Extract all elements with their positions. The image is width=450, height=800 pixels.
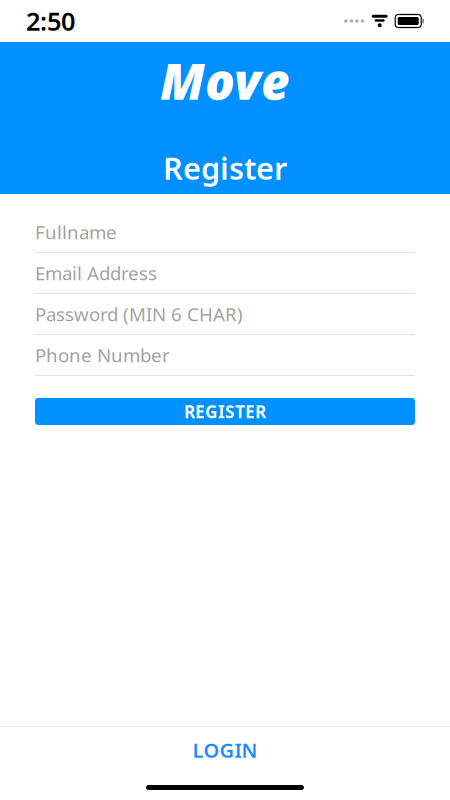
staticText: Phone Number bbox=[35, 343, 170, 367]
staticText: Email Address bbox=[35, 261, 157, 285]
button[interactable]: REGISTER bbox=[35, 398, 415, 425]
staticText: REGISTER bbox=[184, 400, 266, 423]
button[interactable]: Password (MIN 6 CHAR) bbox=[35, 294, 415, 335]
staticText: Register bbox=[163, 147, 287, 188]
staticText: Password (MIN 6 CHAR) bbox=[35, 302, 243, 326]
staticText: LOGIN bbox=[192, 737, 257, 763]
staticText: Fullname bbox=[35, 220, 117, 244]
button[interactable]: Phone Number bbox=[35, 335, 415, 376]
button[interactable]: Email Address bbox=[35, 253, 415, 294]
staticText: Move bbox=[160, 48, 290, 113]
button[interactable]: Fullname bbox=[35, 212, 415, 253]
button[interactable]: LOGIN bbox=[0, 727, 450, 773]
staticText: 2:50 bbox=[26, 4, 75, 38]
